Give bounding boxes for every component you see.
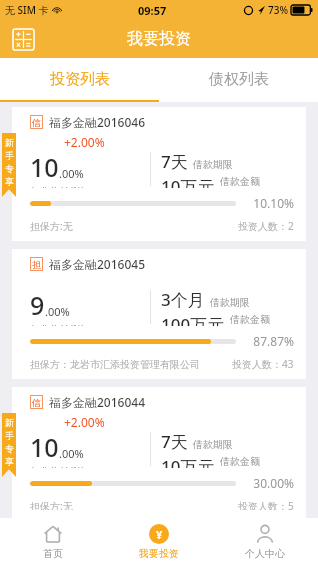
staticText: 87.87% [244,333,294,349]
staticText: 个人中心 [245,547,285,560]
staticText: 年化收益(%) [30,464,85,468]
staticText: 福多金融2016045 [49,256,146,272]
staticText: 09:57 [138,3,167,18]
staticText: 无 SIM 卡 [5,3,49,17]
button[interactable]: 信 [12,107,306,241]
staticText: 3个月 [161,288,205,311]
staticText: 新 [5,137,14,148]
staticText: 7天 [161,430,188,453]
staticText: 年化收益(%) [30,322,85,326]
staticText: 借款期限 [193,158,233,171]
staticText: 担 [32,259,41,270]
staticText: 享 [5,456,14,467]
staticText: 100万元 [161,313,225,326]
staticText: 10 [30,150,59,184]
staticText: 福多金融2016044 [49,394,146,410]
staticText: .00% [59,446,84,461]
staticText: 7天 [161,150,188,173]
staticText: 投资人数：2 [238,219,294,233]
staticText: 10 [30,430,59,464]
staticText: 我要投资 [139,547,179,560]
staticText: 借款金额 [220,175,260,186]
button[interactable]: 担 [12,249,306,379]
staticText: 新 [5,417,14,428]
staticText: 投资人数：5 [238,499,294,510]
staticText: 我要投资 [127,29,191,49]
staticText: 30.00% [244,475,294,491]
staticText: 手 [5,430,14,441]
staticText: 债权列表 [209,70,269,89]
staticText: 福多金融2016046 [49,114,146,130]
staticText: 9 [30,288,45,322]
staticText: +2.00% [64,134,105,150]
staticText: 专 [5,443,14,454]
staticText: 年化收益(%) [30,184,85,188]
staticText: 借款金额 [230,313,270,324]
staticText: .00% [45,304,70,319]
staticText: 首页 [43,547,63,560]
staticText: 借款金额 [220,455,260,466]
staticText: 担保方:无 [30,499,73,510]
staticText: 10万元 [161,175,215,188]
staticText: 担保方：龙岩市汇添投资管理有限公司 [30,358,200,371]
staticText: .00% [59,166,84,181]
staticText: ¥ [156,527,163,542]
staticText: 享 [5,176,14,187]
staticText: 信 [32,397,41,408]
staticText: 投资列表 [50,70,110,89]
staticText: 手 [5,150,14,161]
button[interactable]: 信 [12,387,306,518]
button[interactable]: 首页 [0,518,106,566]
staticText: +2.00% [64,414,105,430]
staticText: 担保方:无 [30,219,73,233]
staticText: 10.10% [244,195,294,211]
staticText: 专 [5,163,14,174]
staticText: 10万元 [161,455,215,468]
button[interactable]: 个人中心 [212,518,318,566]
staticText: 借款期限 [210,296,250,309]
button[interactable]: 计算器 [10,26,36,52]
button[interactable]: 债权列表 [159,58,318,100]
staticText: 投资人数：43 [232,357,294,371]
staticText: 信 [32,117,41,128]
staticText: 借款期限 [193,438,233,451]
button[interactable]: 投资列表 [0,58,159,100]
staticText: 73% [268,3,288,17]
button[interactable]: ¥ [106,518,212,566]
